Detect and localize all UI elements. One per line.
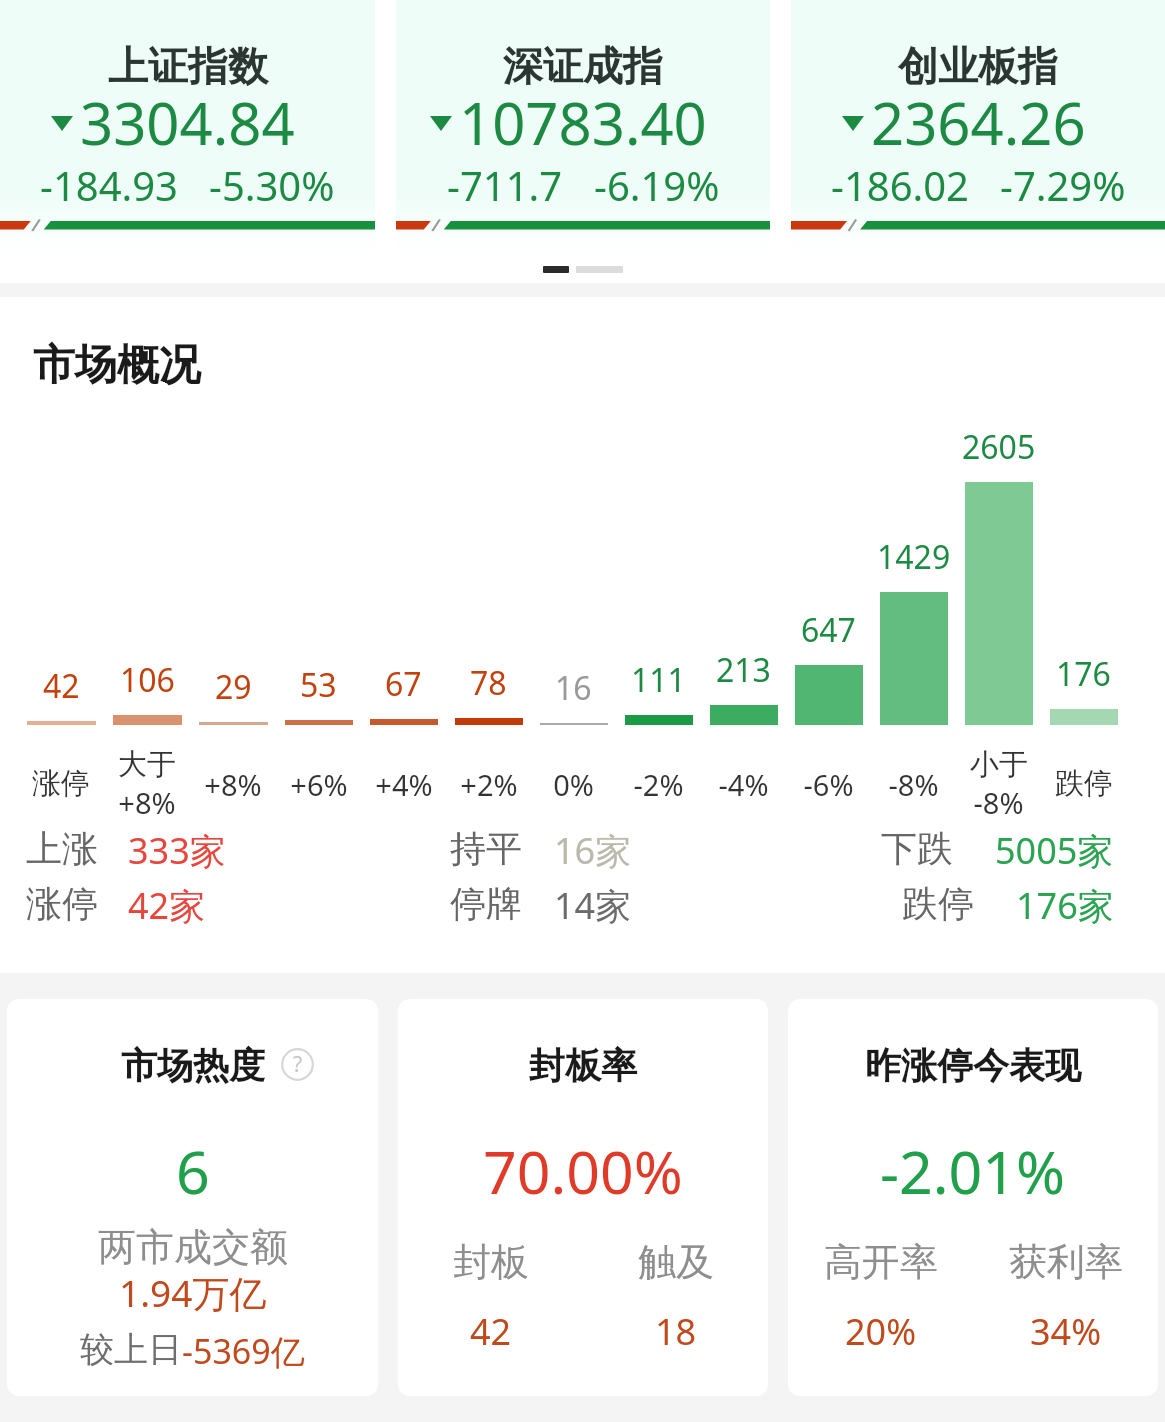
staticText: 高开率: [824, 1238, 938, 1286]
staticText: 647: [801, 608, 856, 652]
staticText: 大于: [118, 746, 176, 783]
staticText: 触及: [638, 1238, 714, 1286]
staticText: 42: [43, 664, 80, 708]
staticText: 两市成交额: [98, 1223, 288, 1271]
staticText: 封板率: [529, 1043, 637, 1088]
staticText: +6%: [290, 765, 348, 804]
other: 市场热度说明: [281, 1048, 314, 1081]
staticText: -5369亿: [182, 1328, 305, 1374]
staticText: 20%: [845, 1307, 917, 1356]
button[interactable]: 昨涨停今表现: [788, 999, 1158, 1396]
staticText: -711.7: [447, 158, 563, 212]
staticText: -5.30%: [209, 158, 335, 212]
staticText: -4%: [718, 765, 769, 804]
button[interactable]: 深证成指: [396, 0, 770, 252]
staticText: -186.02: [831, 158, 969, 212]
staticText: 0%: [553, 765, 594, 804]
staticText: 上证指数: [108, 41, 268, 91]
staticText: 涨停: [26, 881, 98, 926]
staticText: -2%: [633, 765, 684, 804]
staticText: 5005家: [995, 826, 1114, 875]
staticText: 176: [1056, 652, 1111, 696]
staticText: 67: [385, 662, 422, 706]
staticText: 2364.26: [871, 83, 1086, 162]
staticText: 42家: [128, 881, 206, 930]
staticText: 111: [631, 658, 686, 702]
button[interactable]: 上证指数: [0, 0, 375, 252]
staticText: 获利率: [1009, 1238, 1123, 1286]
staticText: 18: [655, 1307, 697, 1356]
staticText: 涨停: [32, 765, 90, 802]
button[interactable]: 创业板指: [791, 0, 1165, 252]
staticText: 小于: [970, 746, 1028, 783]
staticText: 16: [555, 666, 592, 710]
staticText: 1.94万亿: [119, 1267, 267, 1318]
staticText: 333家: [128, 826, 226, 875]
button[interactable]: 封板率: [398, 999, 768, 1396]
staticText: 213: [716, 648, 771, 692]
staticText: -8%: [973, 783, 1024, 822]
staticText: -7.29%: [1000, 158, 1126, 212]
staticText: 42: [470, 1307, 512, 1356]
staticText: +4%: [375, 765, 433, 804]
staticText: -2.01%: [880, 1131, 1066, 1211]
staticText: 下跌: [881, 826, 953, 871]
staticText: 2605: [962, 425, 1036, 469]
staticText: 14家: [554, 881, 632, 930]
staticText: +8%: [118, 783, 176, 822]
staticText: +8%: [204, 765, 262, 804]
staticText: 10783.40: [459, 83, 707, 162]
staticText: ?: [293, 1050, 303, 1079]
staticText: 29: [215, 665, 252, 709]
staticText: -6.19%: [594, 158, 720, 212]
staticText: 6: [176, 1131, 210, 1211]
staticText: 16家: [554, 826, 632, 875]
staticText: 53: [300, 663, 337, 707]
staticText: 封板: [453, 1238, 529, 1286]
staticText: 1429: [877, 535, 951, 579]
staticText: 深证成指: [503, 41, 663, 91]
staticText: 跌停: [1055, 765, 1113, 802]
staticText: 3304.84: [80, 83, 295, 162]
staticText: 创业板指: [898, 41, 1058, 91]
staticText: 34%: [1030, 1307, 1102, 1356]
staticText: 跌停: [902, 881, 974, 926]
staticText: 市场热度: [121, 1043, 265, 1088]
staticText: 106: [120, 658, 175, 702]
staticText: 较上日: [80, 1328, 182, 1371]
staticText: 上涨: [26, 826, 98, 871]
staticText: 78: [470, 661, 507, 705]
staticText: 停牌: [450, 881, 522, 926]
staticText: 昨涨停今表现: [865, 1043, 1081, 1088]
staticText: -184.93: [40, 158, 178, 212]
staticText: 市场概况: [33, 339, 201, 392]
staticText: +2%: [460, 765, 518, 804]
staticText: 70.00%: [483, 1131, 683, 1211]
staticText: -8%: [888, 765, 939, 804]
staticText: 176家: [1016, 881, 1114, 930]
staticText: -6%: [803, 765, 854, 804]
button[interactable]: 市场热度: [7, 999, 378, 1396]
staticText: 持平: [450, 826, 522, 871]
